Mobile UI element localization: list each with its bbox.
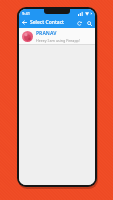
button[interactable]: Refresh: [74, 18, 84, 28]
staticText: Select Contact: [30, 19, 74, 26]
staticText: PRANAV: [36, 30, 57, 37]
button[interactable]: PRANAV: [19, 28, 95, 44]
staticText: 9:41: [22, 11, 30, 16]
button[interactable]: Back: [19, 17, 30, 28]
button[interactable]: Search: [84, 18, 94, 28]
staticText: Heeey I am using Fireapp!: [36, 38, 80, 43]
